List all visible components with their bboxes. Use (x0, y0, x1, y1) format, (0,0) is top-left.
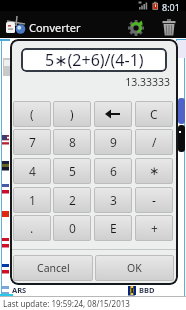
button[interactable]: / (135, 129, 173, 155)
button[interactable]: 7 (13, 129, 51, 155)
staticText: BBD (139, 285, 155, 295)
button[interactable]: 2 (53, 187, 91, 213)
staticText: 0 (69, 220, 76, 236)
staticText: 5∗(2+6)/(4-1) (45, 49, 144, 71)
button[interactable]: 9 (94, 129, 132, 155)
staticText: Last update: 19:59:24, 08/15/2013 (3, 298, 130, 309)
button[interactable]: ( (13, 101, 51, 127)
button[interactable]: OK (95, 255, 174, 281)
staticText: E (110, 220, 117, 236)
staticText: . (30, 220, 34, 236)
staticText: / (152, 134, 157, 150)
staticText: 8:01 (162, 1, 180, 12)
staticText: + (151, 220, 158, 236)
staticText: ( (30, 106, 34, 122)
staticText: ARS (12, 285, 27, 295)
button[interactable]: 8 (53, 129, 91, 155)
staticText: ∗ (149, 164, 160, 178)
staticText: 2 (69, 192, 76, 208)
staticText: 5 (69, 163, 76, 179)
button[interactable]: 5 (53, 158, 91, 184)
button[interactable]: 4 (13, 158, 51, 184)
staticText: - (152, 192, 156, 208)
staticText: 7 (29, 134, 36, 150)
button[interactable]: 3 (94, 187, 132, 213)
staticText: 4 (29, 163, 36, 179)
button[interactable]: + (135, 215, 173, 241)
staticText: OK (127, 261, 142, 275)
staticText: 6 (110, 163, 117, 179)
button[interactable] (159, 18, 179, 38)
staticText: 8 (69, 134, 76, 150)
staticText: ) (70, 106, 74, 122)
staticText: 1 (29, 192, 36, 208)
button[interactable]: Cancel (13, 255, 93, 281)
button[interactable]: 0 (53, 215, 91, 241)
staticText: 13.33333 (70, 75, 170, 89)
button[interactable]: C (135, 101, 173, 127)
button[interactable]: 1 (13, 187, 51, 213)
staticText: Converter (29, 20, 81, 35)
button[interactable]: 6 (94, 158, 132, 184)
staticText: 9 (110, 134, 117, 150)
staticText: 3 (110, 192, 117, 208)
staticText: Cancel (37, 261, 70, 275)
button[interactable]: ∗ (135, 158, 173, 184)
button[interactable] (126, 18, 148, 38)
button[interactable]: E (94, 215, 132, 241)
button[interactable] (94, 101, 132, 127)
button[interactable]: - (135, 187, 173, 213)
button[interactable]: . (13, 215, 51, 241)
button[interactable]: ) (53, 101, 91, 127)
staticText: C (150, 106, 158, 122)
